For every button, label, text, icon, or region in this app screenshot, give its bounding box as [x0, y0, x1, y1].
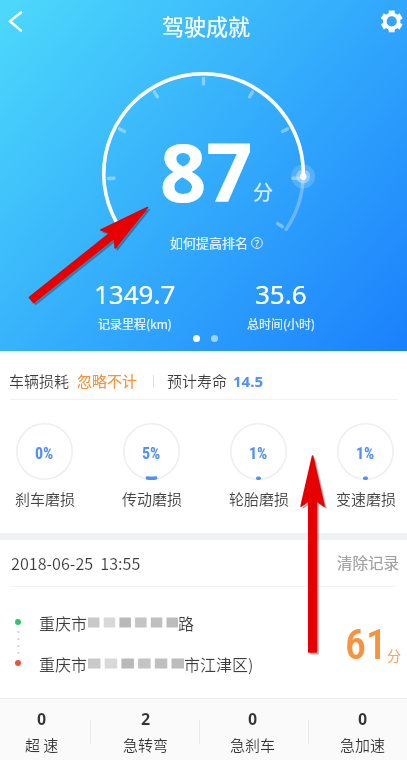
staticText: 分: [253, 177, 273, 206]
button[interactable]: 1%: [230, 423, 287, 480]
staticText: 驾驶成就: [162, 9, 251, 41]
staticText: 重庆市: [39, 611, 88, 634]
staticText: 车辆损耗: [9, 370, 70, 392]
staticText: 0: [248, 708, 258, 730]
staticText: 急刹车: [230, 734, 276, 756]
button[interactable]: 0%: [16, 423, 73, 480]
staticText: 1349.7: [94, 276, 176, 311]
staticText: 传动磨损: [92, 488, 212, 510]
staticText: 分: [387, 645, 401, 665]
button[interactable]: 1%: [337, 423, 394, 480]
staticText: 清除记录: [337, 551, 400, 573]
staticText: 1%: [249, 444, 268, 463]
button[interactable]: [0, 587, 407, 699]
staticText: 14.5: [233, 371, 263, 391]
button[interactable]: 2: [96, 698, 196, 760]
staticText: 急转弯: [123, 734, 169, 756]
staticText: 变速磨损: [306, 488, 407, 510]
staticText: 急加速: [340, 734, 386, 756]
button[interactable]: Back: [0, 1, 40, 43]
staticText: 忽略不计: [77, 370, 138, 392]
staticText: 61: [345, 620, 387, 669]
staticText: 预计寿命: [167, 370, 228, 392]
staticText: 35.6: [255, 276, 307, 311]
staticText: 轮胎磨损: [199, 488, 319, 510]
staticText: 2: [141, 708, 151, 730]
staticText: 记录里程(km): [98, 315, 172, 332]
staticText: 路: [178, 611, 195, 634]
button[interactable]: 0: [0, 698, 92, 760]
staticText: 超 速: [25, 734, 59, 756]
staticText: ?: [255, 237, 259, 249]
staticText: 5%: [142, 444, 161, 463]
staticText: 0%: [35, 444, 54, 463]
button[interactable]: 5%: [123, 423, 180, 480]
button[interactable]: 清除记录: [337, 551, 400, 573]
staticText: 0: [37, 708, 47, 730]
button[interactable]: Settings: [373, 3, 407, 40]
staticText: 如何提高排名: [170, 233, 249, 252]
button[interactable]: 如何提高排名: [170, 233, 263, 252]
button[interactable]: 0: [313, 698, 407, 760]
button[interactable]: 0: [203, 698, 303, 760]
staticText: 刹车磨损: [0, 488, 105, 510]
staticText: 总时间(小时): [247, 315, 316, 332]
staticText: 87: [160, 115, 253, 225]
staticText: 重庆市: [39, 652, 88, 675]
staticText: 0: [358, 708, 368, 730]
staticText: 市江津区): [184, 652, 254, 675]
staticText: 2018-06-25 13:55: [11, 551, 141, 574]
staticText: 1%: [356, 444, 375, 463]
